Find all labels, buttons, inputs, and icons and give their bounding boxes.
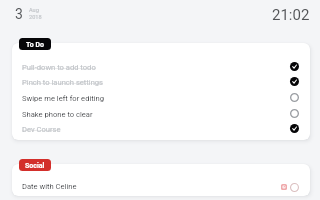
staticText: Pinch to launch settings <box>22 78 104 87</box>
staticText: Aug <box>29 7 39 14</box>
button[interactable]: Pinch to launch settings <box>12 73 310 89</box>
staticText: To Do <box>26 41 44 49</box>
button[interactable]: Swipe me left for editing <box>12 89 310 105</box>
button[interactable]: Dev Course <box>12 120 310 136</box>
other: Mark done <box>290 183 299 192</box>
other: Reminder <box>281 184 287 190</box>
staticText: Pull-down to add todo <box>22 63 96 72</box>
button[interactable]: Social <box>19 159 51 171</box>
button[interactable]: To Do <box>19 38 51 50</box>
button[interactable]: Shake phone to clear <box>12 105 310 121</box>
staticText: Social <box>25 162 45 170</box>
staticText: 21:02 <box>272 6 310 24</box>
staticText: Shake phone to clear <box>22 110 93 119</box>
button[interactable]: Date with Celine <box>12 179 310 195</box>
button[interactable]: Pull-down to add todo <box>12 58 310 74</box>
staticText: Dev Course <box>22 125 61 134</box>
staticText: 2018 <box>29 14 42 21</box>
staticText: Date with Celine <box>22 182 77 191</box>
staticText: 3 <box>15 6 23 22</box>
staticText: Swipe me left for editing <box>22 94 105 103</box>
